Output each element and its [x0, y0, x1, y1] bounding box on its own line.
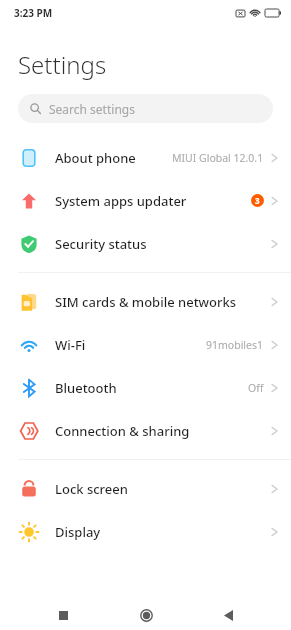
- button[interactable]: Recents: [43, 600, 83, 630]
- staticText: 3:23 PM: [14, 6, 53, 20]
- button[interactable]: About phone: [0, 136, 291, 179]
- other: System apps updater: [19, 191, 39, 211]
- staticText: Display: [55, 523, 271, 541]
- other: Wi-Fi: [19, 335, 39, 355]
- staticText: Settings: [18, 48, 107, 81]
- staticText: 91mobiles1: [206, 338, 264, 352]
- button[interactable]: Lock screen: [0, 467, 291, 510]
- button[interactable]: Back: [208, 600, 248, 630]
- staticText: Lock screen: [55, 480, 271, 498]
- staticText: Wi-Fi: [55, 336, 206, 354]
- staticText: MIUI Global 12.0.1: [172, 151, 264, 165]
- other: Bluetooth: [19, 378, 39, 398]
- button[interactable]: Connection and sharing: [0, 409, 291, 452]
- staticText: 3: [255, 195, 260, 206]
- staticText: Search settings: [49, 101, 135, 117]
- staticText: Security status: [55, 235, 271, 253]
- staticText: Connection & sharing: [55, 422, 271, 440]
- button[interactable]: SIM cards and mobile networks: [0, 280, 291, 323]
- other: Connection and sharing: [19, 421, 39, 441]
- staticText: About phone: [55, 149, 172, 167]
- button[interactable]: Wi-Fi: [0, 323, 291, 366]
- other: Display: [19, 522, 39, 542]
- button[interactable]: Bluetooth: [0, 366, 291, 409]
- button[interactable]: Search settings: [18, 94, 273, 123]
- staticText: Off: [248, 381, 264, 395]
- other: About phone: [19, 148, 39, 168]
- button[interactable]: Display: [0, 510, 291, 553]
- button[interactable]: System apps updater: [0, 179, 291, 222]
- staticText: Bluetooth: [55, 379, 248, 397]
- other: SIM cards and mobile networks: [19, 292, 39, 312]
- button[interactable]: Home: [126, 600, 166, 630]
- button[interactable]: Security status: [0, 222, 291, 265]
- staticText: SIM cards & mobile networks: [55, 293, 271, 311]
- staticText: System apps updater: [55, 192, 251, 210]
- other: Security status: [19, 234, 39, 254]
- other: Lock screen: [19, 479, 39, 499]
